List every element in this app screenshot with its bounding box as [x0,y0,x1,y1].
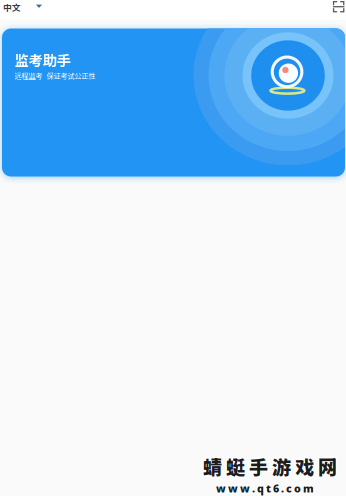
staticText: w w w . q t 6 . c o m [217,481,315,495]
staticText: 远程监考 保证考试公正性 [15,70,96,81]
staticText: 蜻 蜓 手 游 戏 网 [205,452,339,480]
staticText: 蜻 蜓 手 游 戏 网 [203,454,337,482]
staticText: w w w . q t 6 . c o m [215,482,313,496]
staticText: 中文 [3,1,21,14]
button[interactable]: 中文 [0,0,46,20]
staticText: 蜻 蜓 手 游 戏 网 [204,454,338,481]
staticText: 蜻 蜓 手 游 戏 网 [203,452,337,480]
button[interactable]: 扫一扫 [328,0,346,20]
staticText: 蜻 蜓 手 游 戏 网 [202,451,336,479]
staticText: w w w . q t 6 . c o m [215,480,313,495]
staticText: 蜻 蜓 手 游 戏 网 [202,454,336,481]
staticText: w w w . q t 6 . c o m [216,482,314,496]
button[interactable]: 监考助手 [2,28,345,176]
staticText: w w w . q t 6 . c o m [216,480,314,494]
staticText: w w w . q t 6 . c o m [216,481,314,495]
staticText: w w w . q t 6 . c o m [217,480,315,495]
staticText: w w w . q t 6 . c o m [217,482,315,496]
staticText: 蜻 蜓 手 游 戏 网 [201,452,335,480]
staticText: 监考助手 [15,49,71,70]
staticText: w w w . q t 6 . c o m [215,481,313,495]
staticText: 蜻 蜓 手 游 戏 网 [204,451,338,479]
staticText: 蜻 蜓 手 游 戏 网 [203,451,337,478]
